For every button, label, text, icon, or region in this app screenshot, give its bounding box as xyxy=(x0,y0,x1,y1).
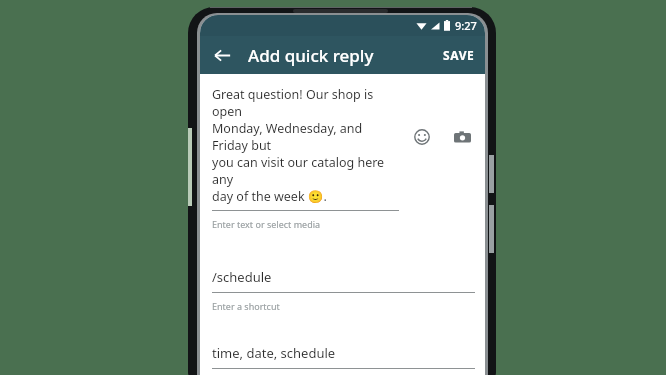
button[interactable]: Back xyxy=(205,38,239,72)
button[interactable]: Take photo xyxy=(449,124,475,150)
button[interactable]: time, date, schedule xyxy=(212,344,475,375)
staticText: SAVE xyxy=(443,47,475,63)
staticText: Enter text or select media xyxy=(212,218,321,230)
staticText: /schedule xyxy=(212,268,272,286)
button[interactable]: SAVE xyxy=(433,39,485,71)
button[interactable]: /schedule xyxy=(212,268,475,312)
staticText: 9:27 xyxy=(455,18,477,33)
button[interactable]: Insert emoji xyxy=(409,124,435,150)
staticText: Great question! Our shop is open Monday,… xyxy=(212,86,399,205)
staticText: time, date, schedule xyxy=(212,344,336,362)
staticText: Add quick reply xyxy=(248,44,374,67)
staticText: Enter a shortcut xyxy=(212,300,280,312)
